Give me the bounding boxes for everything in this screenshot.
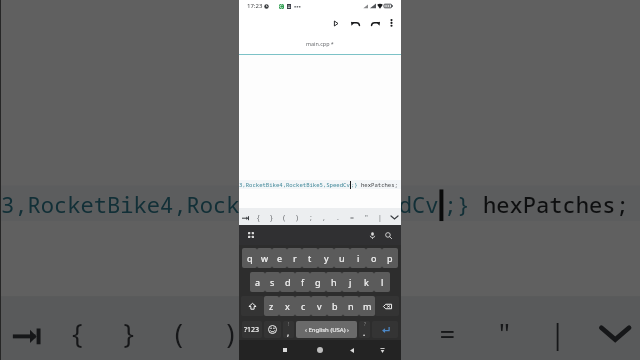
button[interactable]: Back: [345, 340, 359, 360]
button[interactable]: ": [475, 296, 530, 360]
button[interactable]: ): [291, 208, 304, 225]
button[interactable]: i: [350, 248, 366, 268]
staticText: ": [499, 316, 511, 355]
button[interactable]: Undo: [345, 14, 365, 32]
button[interactable]: Emoji: [264, 321, 281, 338]
staticText: u: [339, 252, 345, 264]
staticText: ;}: [443, 189, 471, 221]
button[interactable]: Home: [313, 340, 327, 360]
staticText: o: [371, 252, 377, 264]
button[interactable]: }: [104, 296, 155, 360]
button[interactable]: ,: [317, 208, 331, 225]
button[interactable]: }: [265, 208, 278, 225]
staticText: ,: [333, 316, 341, 355]
button[interactable]: Search: [381, 228, 395, 242]
button[interactable]: .: [364, 296, 420, 360]
staticText: i: [357, 252, 360, 264]
staticText: ?: [364, 321, 366, 327]
staticText: (: [283, 213, 286, 223]
button[interactable]: b: [327, 296, 343, 316]
staticText: ;: [310, 213, 312, 223]
button[interactable]: Run: [326, 14, 346, 32]
button[interactable]: (: [278, 208, 291, 225]
button[interactable]: Shift: [241, 296, 264, 316]
staticText: f: [301, 276, 305, 288]
button[interactable]: main.cpp *: [239, 33, 401, 54]
button[interactable]: s: [265, 272, 280, 292]
button[interactable]: d: [280, 272, 295, 292]
button[interactable]: w: [257, 248, 272, 268]
staticText: ;}: [351, 181, 358, 189]
button[interactable]: |: [530, 296, 586, 360]
button[interactable]: Apps: [245, 229, 257, 241]
staticText: }: [270, 213, 273, 223]
button[interactable]: |: [373, 208, 387, 225]
staticText: a: [255, 276, 261, 288]
button[interactable]: h: [326, 272, 342, 292]
button[interactable]: Redo: [365, 14, 385, 32]
button[interactable]: ‹ English (USA) ›: [296, 321, 357, 338]
button[interactable]: k: [358, 272, 374, 292]
button[interactable]: ?: [359, 321, 370, 338]
staticText: 3,RocketBike4,RocketBike5,SpeedCv: [1, 189, 439, 221]
button[interactable]: y: [318, 248, 334, 268]
button[interactable]: {: [252, 208, 265, 225]
button[interactable]: ;: [304, 208, 317, 225]
staticText: {: [257, 213, 260, 223]
button[interactable]: f: [295, 272, 310, 292]
staticText: |: [378, 213, 382, 223]
button[interactable]: Collapse: [586, 296, 640, 360]
button[interactable]: v: [311, 296, 327, 316]
staticText: c: [301, 300, 306, 312]
staticText: x: [285, 300, 290, 312]
button[interactable]: =: [345, 208, 359, 225]
button[interactable]: ": [359, 208, 373, 225]
button[interactable]: .: [331, 208, 345, 225]
button[interactable]: Tab: [1, 296, 52, 360]
staticText: ?123: [244, 325, 260, 335]
button[interactable]: ,: [309, 296, 364, 360]
staticText: hexPatches;: [483, 189, 629, 221]
staticText: d: [285, 276, 291, 288]
button[interactable]: x: [279, 296, 295, 316]
button[interactable]: ): [206, 296, 258, 360]
button[interactable]: More options: [384, 14, 398, 32]
button[interactable]: ?123: [242, 321, 262, 338]
button[interactable]: o: [366, 248, 382, 268]
staticText: ): [226, 316, 238, 355]
button[interactable]: Hide keyboard: [375, 340, 389, 360]
button[interactable]: =: [420, 296, 475, 360]
button[interactable]: g: [310, 272, 326, 292]
button[interactable]: r: [287, 248, 302, 268]
button[interactable]: j: [342, 272, 358, 292]
staticText: =: [439, 316, 459, 355]
button[interactable]: p: [382, 248, 398, 268]
button[interactable]: Voice input: [365, 228, 379, 242]
staticText: ‹ English (USA) ›: [305, 326, 349, 334]
button[interactable]: e: [272, 248, 287, 268]
button[interactable]: !: [283, 321, 294, 338]
button[interactable]: Backspace: [375, 296, 399, 316]
button[interactable]: Recents: [278, 340, 292, 360]
staticText: (: [175, 316, 187, 355]
button[interactable]: Collapse: [387, 208, 401, 225]
button[interactable]: z: [264, 296, 279, 316]
button[interactable]: q: [242, 248, 257, 268]
button[interactable]: (: [155, 296, 206, 360]
button[interactable]: c: [295, 296, 311, 316]
button[interactable]: Enter: [372, 321, 398, 338]
button[interactable]: ;: [258, 296, 309, 360]
staticText: w: [261, 252, 269, 264]
staticText: .: [337, 213, 339, 223]
button[interactable]: n: [343, 296, 359, 316]
button[interactable]: l: [374, 272, 390, 292]
button[interactable]: u: [334, 248, 350, 268]
staticText: ): [296, 213, 299, 223]
button[interactable]: a: [250, 272, 265, 292]
button[interactable]: Tab: [239, 208, 252, 225]
button[interactable]: t: [302, 248, 318, 268]
button[interactable]: {: [52, 296, 104, 360]
staticText: .: [388, 316, 396, 355]
staticText: hexPatches;: [361, 181, 398, 189]
button[interactable]: m: [359, 296, 375, 316]
